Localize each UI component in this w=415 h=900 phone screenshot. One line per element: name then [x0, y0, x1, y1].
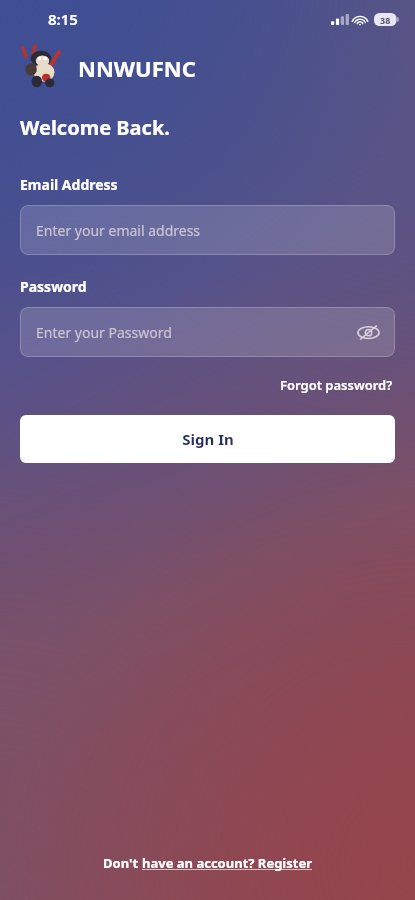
button[interactable]: Forgot password?	[278, 373, 395, 397]
staticText: Enter your Password	[36, 323, 172, 342]
button[interactable]: Enter your Password	[20, 307, 395, 357]
staticText: 38	[380, 14, 391, 26]
button[interactable]: Enter your email address	[20, 205, 395, 255]
staticText: Email Address	[20, 175, 118, 194]
staticText: 8:15	[48, 9, 78, 29]
staticText: Forgot password?	[280, 376, 393, 394]
staticText: NNWUFNC	[78, 53, 196, 83]
staticText: have an account? Register	[142, 854, 313, 872]
button[interactable]: Show password	[351, 315, 385, 349]
staticText: Don't	[103, 854, 142, 872]
staticText: Sign In	[182, 429, 234, 449]
button[interactable]: Sign In	[20, 415, 395, 463]
button[interactable]: Don't	[0, 848, 415, 878]
staticText: Password	[20, 277, 87, 296]
staticText: Enter your email address	[36, 221, 201, 240]
staticText: Welcome Back.	[20, 114, 170, 141]
